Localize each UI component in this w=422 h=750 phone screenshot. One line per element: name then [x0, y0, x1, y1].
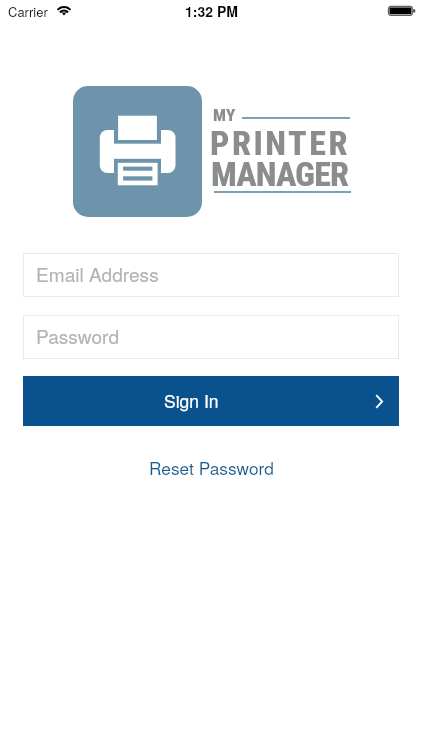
staticText: Password — [36, 322, 120, 349]
staticText: 1:32 PM — [185, 1, 238, 21]
staticText: MY — [213, 105, 236, 125]
button[interactable]: Sign In — [23, 376, 399, 426]
staticText: Carrier — [8, 2, 48, 21]
button[interactable]: Password — [23, 315, 399, 359]
staticText: Sign In — [164, 388, 219, 413]
staticText: Email Address — [36, 260, 159, 287]
staticText: MANAGER — [211, 154, 349, 194]
staticText: Reset Password — [149, 455, 274, 480]
staticText: PRINTER — [210, 123, 350, 163]
button[interactable]: Email Address — [23, 253, 399, 297]
button[interactable]: Reset Password — [131, 451, 291, 483]
